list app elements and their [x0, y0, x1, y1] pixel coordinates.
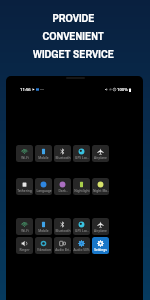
button[interactable]: Mobile — [35, 218, 52, 235]
staticText: Wi-Fi — [21, 229, 29, 233]
button[interactable]: Audio Bri.. — [54, 237, 71, 254]
button[interactable]: GPS Loc.. — [73, 218, 90, 235]
staticText: Wi-Fi — [21, 156, 29, 160]
staticText: Airplane — [94, 156, 107, 160]
button[interactable]: GPS Loc.. — [73, 145, 90, 162]
button[interactable]: Ringer — [16, 237, 33, 254]
staticText: CONVENIENT — [42, 28, 104, 43]
button[interactable]: Wi-Fi — [16, 218, 33, 235]
staticText: WIDGET SERVICE — [33, 46, 114, 61]
staticText: Bluetooth — [55, 229, 71, 233]
button[interactable]: Mobile — [35, 145, 52, 162]
button[interactable]: Wi-Fi — [16, 145, 33, 162]
staticText: Night Mo.. — [93, 189, 109, 193]
staticText: Mobile — [38, 156, 49, 160]
button[interactable]: Language — [35, 178, 52, 195]
staticText: Bluetooth — [55, 156, 71, 160]
staticText: GPS Loc.. — [75, 156, 89, 160]
button[interactable]: Airplane — [92, 218, 109, 235]
button[interactable]: Bluetooth — [54, 218, 71, 235]
button[interactable]: Tethering — [16, 178, 33, 195]
button[interactable]: Vibration — [35, 237, 52, 254]
staticText: Language — [36, 189, 52, 193]
button[interactable]: Night Mo.. — [92, 178, 109, 195]
staticText: Nightlight — [74, 189, 90, 193]
button[interactable]: Settings — [92, 237, 109, 254]
staticText: Audio 50% — [73, 248, 90, 252]
staticText: Settings — [94, 248, 107, 252]
staticText: 100% — [117, 87, 128, 93]
staticText: Dark.. — [58, 189, 68, 193]
button[interactable]: Dark.. — [54, 178, 71, 195]
staticText: PROVIDE — [52, 10, 95, 25]
button[interactable]: Airplane — [92, 145, 109, 162]
staticText: Vibration — [37, 248, 51, 252]
staticText: GPS Loc.. — [75, 229, 89, 233]
staticText: Ringer — [19, 248, 30, 252]
staticText: 11:56 — [20, 87, 31, 93]
staticText: Mobile — [38, 229, 49, 233]
button[interactable]: Bluetooth — [54, 145, 71, 162]
staticText: Airplane — [94, 229, 107, 233]
staticText: Tethering — [17, 189, 32, 193]
button[interactable]: Audio 50% — [73, 237, 90, 254]
button[interactable]: Nightlight — [73, 178, 90, 195]
staticText: Audio Bri.. — [55, 248, 71, 252]
